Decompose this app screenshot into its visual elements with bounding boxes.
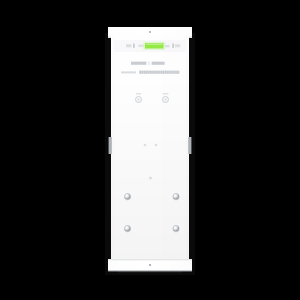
button[interactable]: Ruijie Reyee wall mount access point pro… [0,0,300,300]
